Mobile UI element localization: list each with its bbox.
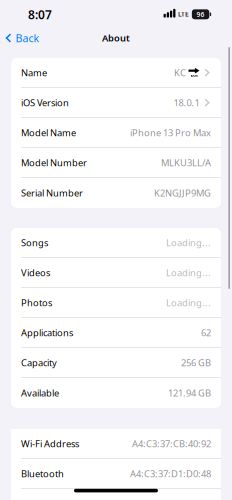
staticText: 121.94 GB <box>168 387 211 399</box>
staticText: 256 GB <box>181 356 211 369</box>
staticText: iPhone 13 Pro Max <box>130 126 211 139</box>
staticText: LTE <box>178 10 189 18</box>
staticText: Loading... <box>166 266 211 279</box>
staticText: 96 <box>197 10 205 19</box>
staticText: 8:07 <box>28 6 52 22</box>
staticText: KC <box>174 66 186 79</box>
staticText: 18.0.1 <box>173 96 199 109</box>
staticText: Model Name <box>21 126 76 139</box>
staticText: K2NGJJP9MG <box>154 187 211 199</box>
staticText: Applications <box>21 326 73 339</box>
button[interactable]: Name <box>11 58 221 88</box>
staticText: A4:C3:37:D1:D0:48 <box>130 467 211 480</box>
staticText: Capacity <box>21 356 57 369</box>
button[interactable]: Back <box>0 27 39 49</box>
staticText: Available <box>21 387 59 399</box>
staticText: Loading... <box>166 236 211 249</box>
staticText: Songs <box>21 236 48 249</box>
staticText: Wi-Fi Address <box>21 437 79 450</box>
staticText: Back <box>15 31 39 45</box>
staticText: Loading... <box>166 296 211 309</box>
staticText: 62 <box>201 326 211 339</box>
staticText: A4:C3:37:CB:40:92 <box>132 437 211 450</box>
staticText: Serial Number <box>21 187 83 199</box>
staticText: Videos <box>21 266 50 279</box>
staticText: SOON <box>190 74 197 77</box>
staticText: Bluetooth <box>21 467 64 480</box>
staticText: Photos <box>21 296 52 309</box>
button[interactable]: iOS Version <box>11 88 221 118</box>
staticText: Name <box>21 66 47 79</box>
staticText: Model Number <box>21 156 87 169</box>
staticText: iOS Version <box>21 96 69 109</box>
staticText: MLKU3LL/A <box>161 156 211 169</box>
staticText: About <box>102 32 130 44</box>
